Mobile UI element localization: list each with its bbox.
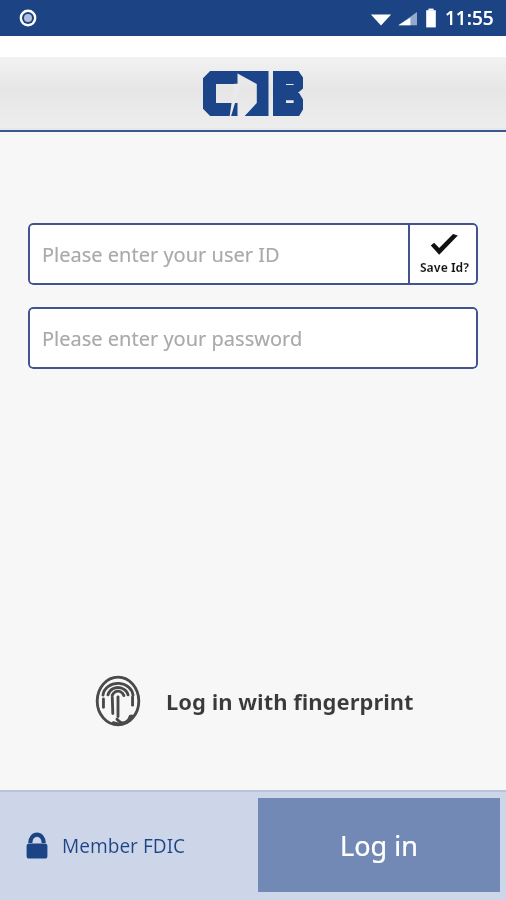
button[interactable]: Member FDIC [0,792,258,900]
button[interactable]: Log in with fingerprint [0,667,506,735]
staticText: Log in with fingerprint [166,686,414,716]
button[interactable]: Please enter your password [28,307,478,369]
button[interactable]: Save Id [410,223,478,285]
staticText: Please enter your user ID [42,241,280,268]
staticText: Save Id? [420,259,469,275]
staticText: Member FDIC [62,833,186,859]
staticText: 11:55 [445,5,494,31]
button[interactable]: Log in [258,798,500,892]
staticText: Log in [340,827,418,864]
staticText: Please enter your password [42,325,303,352]
button[interactable]: Please enter your user ID [28,223,408,285]
